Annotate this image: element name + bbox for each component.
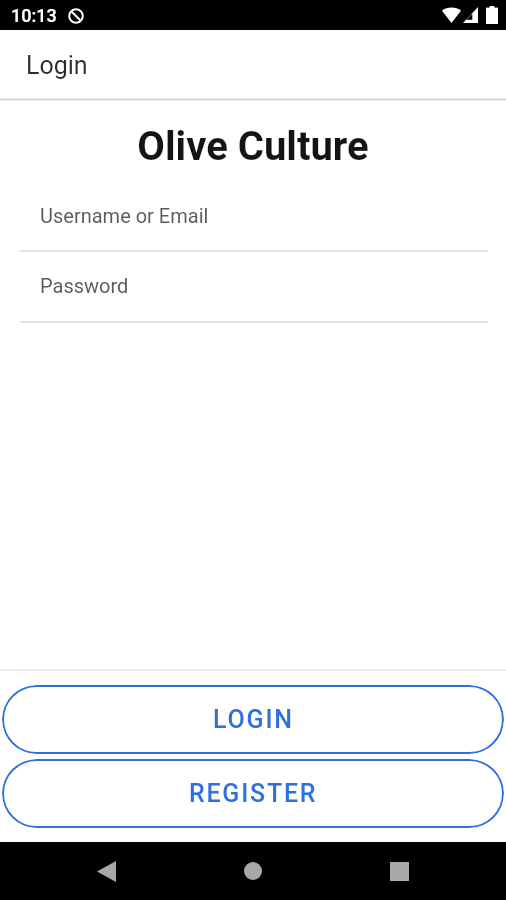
- button[interactable]: Home: [229, 847, 277, 895]
- button[interactable]: LOGIN: [2, 685, 504, 754]
- button[interactable]: REGISTER: [2, 759, 504, 828]
- button[interactable]: Back: [82, 847, 130, 895]
- staticText: Login: [26, 51, 88, 80]
- staticText: Username or Email: [40, 204, 209, 227]
- staticText: Password: [40, 274, 129, 297]
- button[interactable]: Password: [0, 262, 506, 323]
- staticText: LOGIN: [213, 705, 294, 734]
- staticText: REGISTER: [189, 779, 318, 808]
- button[interactable]: Username or Email: [0, 191, 506, 252]
- button[interactable]: Recent apps: [375, 847, 423, 895]
- staticText: 10:13: [11, 5, 57, 26]
- staticText: Olive Culture: [0, 123, 506, 170]
